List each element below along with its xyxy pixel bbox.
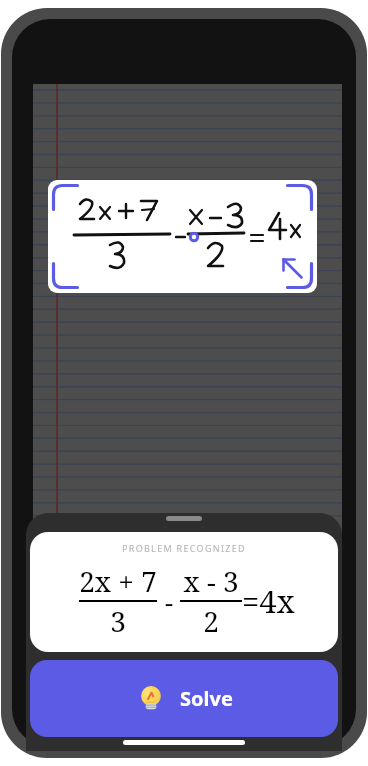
button[interactable]: [48, 180, 317, 293]
staticText: Solve: [180, 685, 233, 712]
staticText: =4x: [242, 580, 295, 622]
staticText: x - 3: [183, 562, 239, 600]
button[interactable]: Solve: [30, 660, 338, 737]
button[interactable]: [166, 516, 202, 521]
staticText: -: [165, 584, 174, 619]
staticText: PROBLEM RECOGNIZED: [122, 542, 246, 554]
staticText: 2x + 7: [79, 562, 157, 600]
staticText: 2: [203, 602, 219, 640]
button[interactable]: PROBLEM RECOGNIZED: [30, 532, 338, 652]
staticText: 3: [110, 602, 126, 640]
